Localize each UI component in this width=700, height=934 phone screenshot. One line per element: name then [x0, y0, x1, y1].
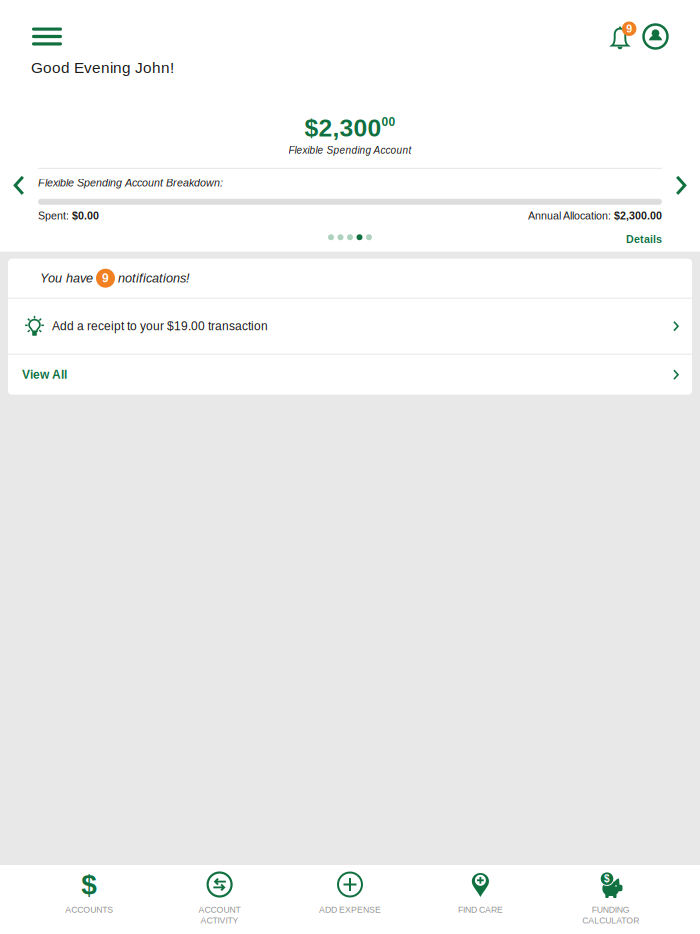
- button[interactable]: Profile: [640, 21, 671, 52]
- staticText: 9: [626, 23, 632, 35]
- staticText: $: [604, 873, 610, 884]
- staticText: $: [81, 869, 97, 900]
- button[interactable]: ACCOUNT: [154, 865, 285, 934]
- staticText: Add a receipt to your $19.00 transaction: [52, 319, 268, 333]
- staticText: notifications!: [118, 271, 190, 285]
- button[interactable]: Add a receipt to your $19.00 transaction: [8, 299, 692, 354]
- staticText: 00: [381, 115, 395, 128]
- staticText: Good Evening John!: [31, 59, 174, 76]
- button[interactable]: ADD EXPENSE: [285, 865, 415, 934]
- staticText: $2,300.00: [614, 210, 662, 222]
- button[interactable]: Previous account: [0, 168, 38, 203]
- staticText: $0.00: [72, 210, 99, 222]
- staticText: $2,300: [304, 114, 381, 142]
- staticText: CALCULATOR: [582, 916, 639, 925]
- staticText: Annual Allocation:: [528, 210, 614, 222]
- staticText: Spent:: [38, 210, 72, 222]
- button[interactable]: Menu: [0, 21, 72, 51]
- button[interactable]: $: [24, 865, 154, 934]
- staticText: Flexible Spending Account: [288, 145, 411, 156]
- staticText: View All: [22, 368, 67, 381]
- staticText: ADD EXPENSE: [319, 905, 381, 915]
- button[interactable]: $: [546, 865, 676, 934]
- staticText: 9: [102, 271, 109, 285]
- staticText: ACCOUNTS: [65, 905, 113, 915]
- button[interactable]: Next account: [662, 168, 700, 203]
- button[interactable]: View All: [8, 355, 692, 395]
- button[interactable]: Notifications: [608, 22, 632, 51]
- button[interactable]: FIND CARE: [415, 865, 546, 934]
- staticText: ACCOUNT: [199, 905, 241, 915]
- staticText: You have: [40, 271, 93, 285]
- staticText: ACTIVITY: [201, 916, 239, 925]
- staticText: Flexible Spending Account Breakdown:: [38, 177, 223, 189]
- staticText: Details: [626, 233, 662, 245]
- staticText: FIND CARE: [458, 905, 503, 915]
- staticText: FUNDING: [592, 905, 630, 915]
- button[interactable]: Details: [622, 231, 666, 247]
